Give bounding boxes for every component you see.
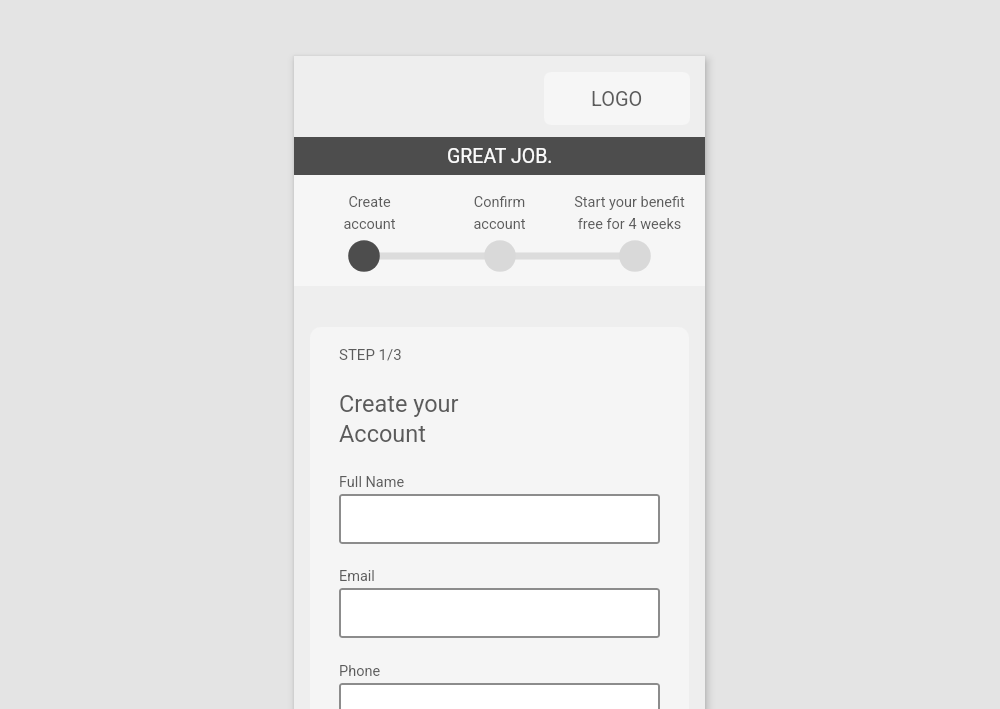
staticText: Confirm account bbox=[473, 194, 526, 232]
button[interactable]: Logo, go to home bbox=[544, 72, 690, 125]
button[interactable]: Full Name input field bbox=[339, 494, 660, 544]
button[interactable]: Start your benefit free for 4 weeks bbox=[564, 194, 694, 268]
staticText: Phone bbox=[339, 663, 381, 680]
button[interactable]: Create account bbox=[304, 194, 434, 268]
staticText: Create account bbox=[343, 194, 396, 232]
staticText: STEP 1/3 bbox=[339, 346, 402, 364]
staticText: GREAT JOB. bbox=[447, 145, 553, 168]
staticText: Create your Account bbox=[339, 390, 459, 447]
staticText: Start your benefit free for 4 weeks bbox=[574, 194, 685, 232]
staticText: Email bbox=[339, 568, 375, 585]
button[interactable]: Phone input field bbox=[339, 683, 660, 709]
staticText: LOGO bbox=[591, 87, 643, 110]
staticText: Full Name bbox=[339, 474, 405, 491]
button[interactable]: Confirm account bbox=[434, 194, 564, 268]
button[interactable]: Email input field bbox=[339, 588, 660, 638]
